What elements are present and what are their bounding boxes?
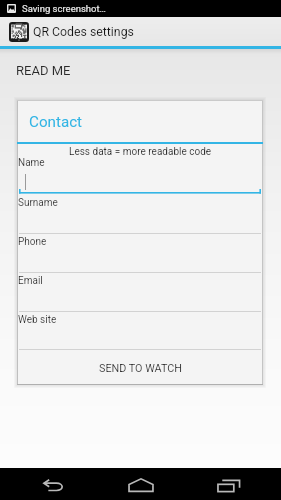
staticText: READ ME <box>16 63 71 78</box>
staticText: Web site <box>18 314 57 326</box>
button[interactable]: Back <box>22 468 85 500</box>
staticText: Less data = more readable code <box>69 146 212 158</box>
staticText: Saving screenshot… <box>22 3 106 14</box>
staticText: SEND TO WATCH <box>99 362 182 375</box>
button[interactable]: Phone <box>17 234 263 274</box>
button[interactable]: QR Codes settings <box>0 17 281 46</box>
staticText: QR Codes settings <box>33 25 134 39</box>
staticText: Phone <box>18 236 47 248</box>
button[interactable]: Web site <box>17 312 263 351</box>
staticText: Contact <box>29 113 83 131</box>
button[interactable]: Home <box>109 468 172 500</box>
staticText: Name <box>18 157 45 169</box>
button[interactable]: Recent apps <box>197 468 260 500</box>
staticText: Email <box>18 275 43 287</box>
button[interactable]: Surname <box>17 195 263 235</box>
button[interactable]: Name <box>17 155 263 194</box>
button[interactable]: Email <box>17 273 263 313</box>
button[interactable]: SEND TO WATCH <box>17 351 263 386</box>
staticText: Surname <box>18 197 58 209</box>
